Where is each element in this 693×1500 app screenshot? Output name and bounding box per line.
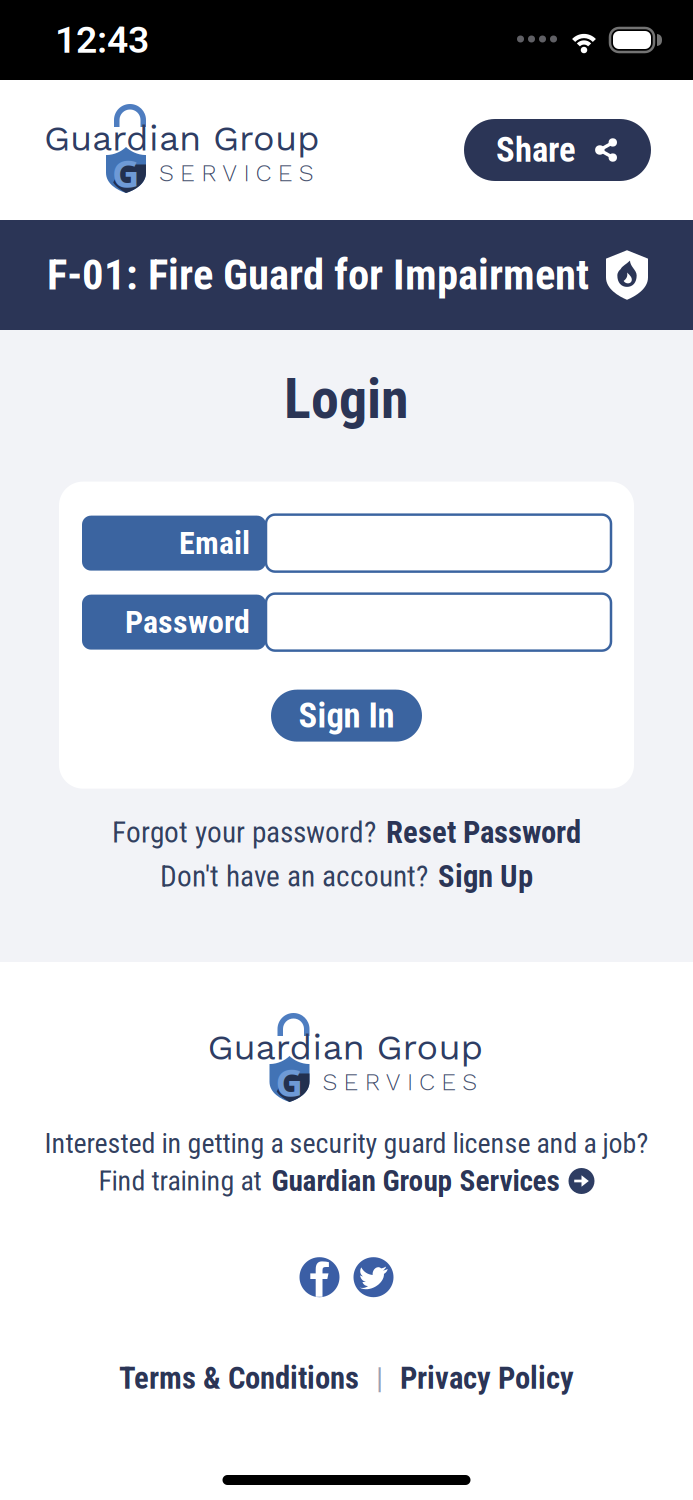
staticText: Sign Up <box>438 859 533 894</box>
button[interactable]: Don't have an account? <box>160 859 533 894</box>
staticText: E <box>278 159 293 187</box>
staticText: Reset Password <box>386 815 581 850</box>
staticText: Guardian Group <box>207 1026 483 1068</box>
staticText: V <box>222 159 237 187</box>
staticText: R <box>365 1068 380 1096</box>
staticText: Email <box>179 524 250 562</box>
staticText: Forgot your password? <box>112 815 376 850</box>
staticText: E <box>180 159 195 187</box>
button[interactable]: Share <box>464 119 651 181</box>
staticText: Password <box>125 603 250 641</box>
staticText: Don't have an account? <box>160 859 428 894</box>
staticText: Sign In <box>298 695 394 736</box>
staticText: G <box>275 1056 303 1108</box>
button[interactable]: Privacy Policy <box>400 1360 574 1396</box>
staticText: 12:43 <box>55 18 149 62</box>
staticText: S <box>322 1068 337 1096</box>
staticText: F-01: Fire Guard for Impairment <box>47 250 589 300</box>
staticText: C <box>256 159 272 187</box>
staticText: Share <box>496 130 576 170</box>
staticText: Guardian Group Services <box>271 1164 559 1198</box>
staticText: E <box>441 1068 456 1096</box>
staticText: C <box>419 1068 435 1096</box>
staticText: E <box>344 1068 359 1096</box>
staticText: I <box>243 159 249 187</box>
staticText: Terms & Conditions <box>119 1360 359 1396</box>
button[interactable]: Facebook <box>299 1257 339 1297</box>
staticText: Interested in getting a security guard l… <box>44 1127 648 1160</box>
staticText: S <box>299 159 314 187</box>
staticText: S <box>462 1068 477 1096</box>
staticText: Find training at <box>98 1165 261 1197</box>
staticText: | <box>376 1361 383 1395</box>
button[interactable]: Guardian Group Services <box>271 1164 594 1198</box>
staticText: Privacy Policy <box>400 1360 574 1396</box>
staticText: Login <box>284 366 409 432</box>
staticText: S <box>159 159 174 187</box>
button[interactable]: Sign In <box>271 690 422 742</box>
button[interactable]: Forgot your password? <box>112 815 581 850</box>
staticText: I <box>407 1068 413 1096</box>
staticText: V <box>386 1068 401 1096</box>
button[interactable]: Terms & Conditions <box>119 1360 359 1396</box>
staticText: R <box>201 159 216 187</box>
button[interactable]: Twitter <box>353 1257 393 1297</box>
staticText: G <box>112 147 140 199</box>
staticText: Guardian Group <box>44 117 320 159</box>
